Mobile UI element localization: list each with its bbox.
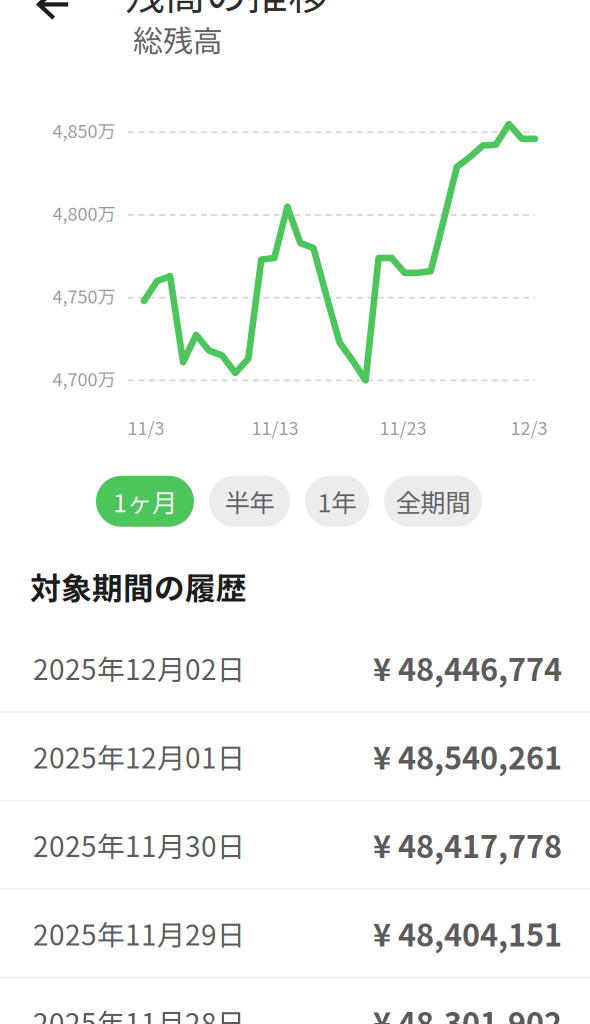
staticText: ¥ 48,540,261 <box>373 734 562 778</box>
staticText: 2025年12月01日 <box>33 736 245 776</box>
staticText: ¥ 48,446,774 <box>373 645 562 690</box>
staticText: 1ヶ月 <box>113 483 177 520</box>
staticText: 2025年12月02日 <box>33 647 245 688</box>
button[interactable]: 2025年12月01日 <box>0 713 590 801</box>
staticText: 全期間 <box>395 483 470 520</box>
button[interactable]: 半年 <box>209 476 290 527</box>
button[interactable]: 1年 <box>305 476 369 527</box>
staticText: ¥ 48,404,151 <box>373 911 562 955</box>
staticText: 半年 <box>224 483 274 520</box>
button[interactable]: 2025年11月30日 <box>0 801 590 890</box>
button[interactable]: 1ヶ月 <box>96 476 194 527</box>
staticText: 2025年11月28日 <box>33 1001 245 1024</box>
staticText: 11/13 <box>251 414 298 440</box>
staticText: 4,850万 <box>52 117 115 143</box>
button[interactable]: Back <box>9 0 99 42</box>
staticText: 4,750万 <box>52 283 115 309</box>
staticText: 2025年11月29日 <box>33 913 245 953</box>
staticText: 1年 <box>317 483 356 520</box>
staticText: 総残高 <box>133 17 223 61</box>
staticText: 4,700万 <box>52 365 115 391</box>
staticText: 対象期間の履歴 <box>30 564 247 608</box>
button[interactable]: 2025年12月02日 <box>0 624 590 713</box>
button[interactable]: 2025年11月28日 <box>0 978 590 1024</box>
button[interactable]: 全期間 <box>384 476 482 527</box>
staticText: ¥ 48,417,778 <box>373 822 562 867</box>
button[interactable]: 2025年11月29日 <box>0 890 590 978</box>
staticText: 2025年11月30日 <box>33 824 245 865</box>
staticText: 4,800万 <box>52 200 115 226</box>
staticText: ¥ 48,301,902 <box>373 999 562 1024</box>
staticText: 11/3 <box>127 414 164 440</box>
staticText: 11/23 <box>379 414 426 440</box>
staticText: 残高の推移 <box>124 0 329 22</box>
staticText: 12/3 <box>510 414 547 440</box>
